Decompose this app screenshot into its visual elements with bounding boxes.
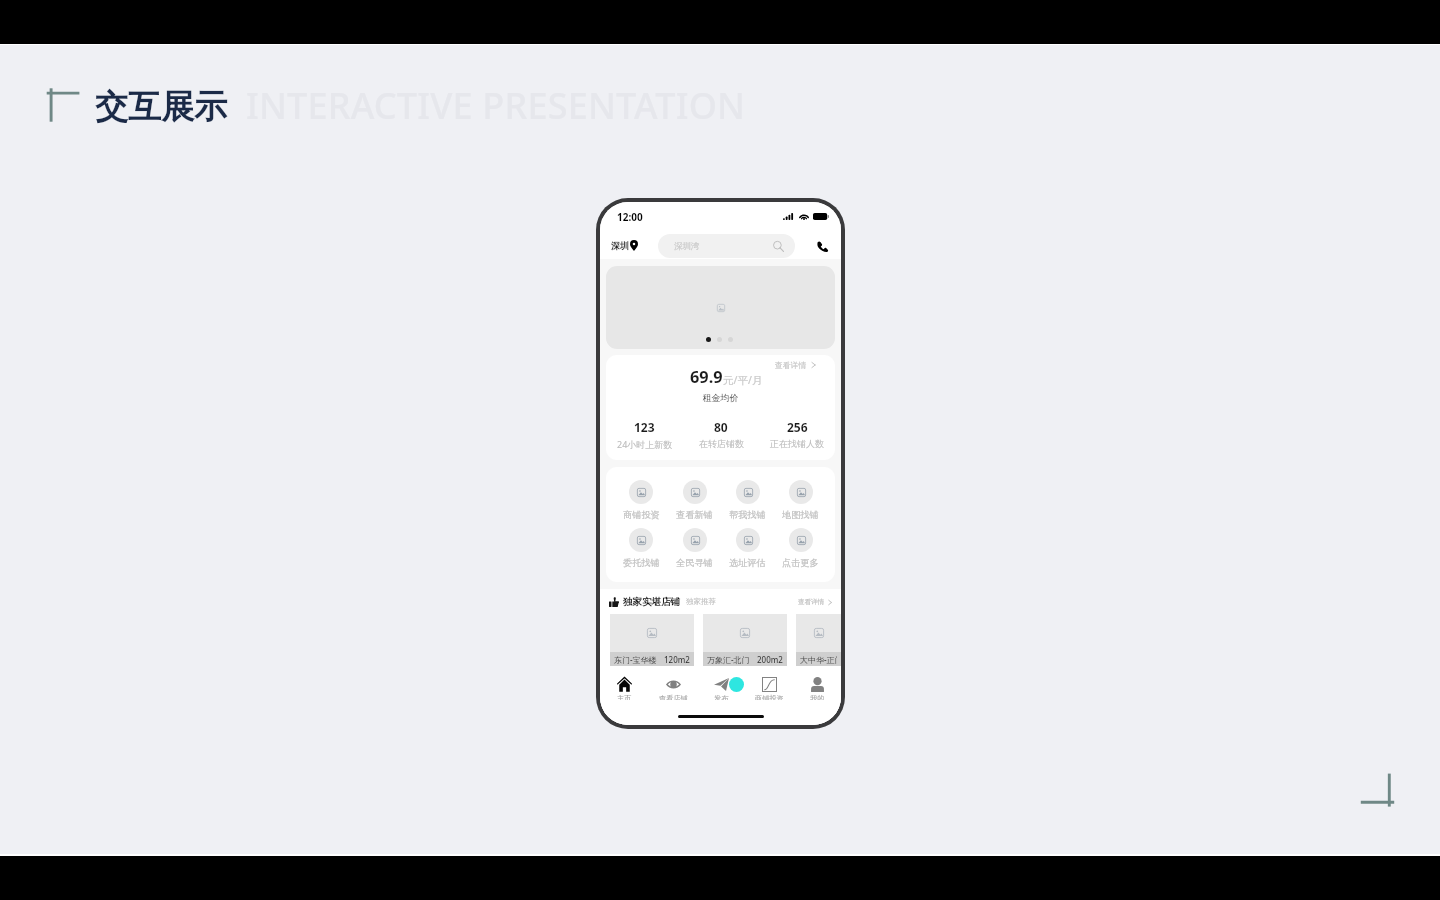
staticText: 全民寻铺 (676, 557, 713, 569)
button[interactable]: 80 (683, 419, 759, 449)
staticText: 24小时上新数 (617, 438, 673, 450)
button[interactable]: 地图找铺 (774, 480, 827, 521)
staticText: 69.9 (690, 366, 723, 388)
staticText: 帮我找铺 (729, 509, 766, 521)
staticText: 我的 (810, 694, 825, 700)
button[interactable]: 帮我找铺 (721, 480, 774, 521)
staticText: 点击更多 (782, 557, 819, 569)
button[interactable]: 查看详情 (798, 598, 832, 606)
button[interactable]: 我的 (793, 668, 841, 700)
staticText: 商铺投资 (623, 509, 660, 521)
button[interactable]: 查看详情 (775, 360, 816, 370)
button[interactable]: 深圳 (611, 240, 638, 251)
button[interactable]: 查看新铺 (668, 480, 721, 521)
staticText: 交互展示 (95, 86, 227, 128)
staticText: 查看新铺 (676, 509, 713, 521)
staticText: 深圳湾 (674, 241, 700, 252)
staticText: 商铺投资 (755, 694, 784, 700)
staticText: 独家推荐 (686, 597, 716, 606)
staticText: 正在找铺人数 (770, 438, 824, 449)
button[interactable]: 商铺投资 (745, 668, 793, 700)
staticText: 80 (714, 419, 728, 435)
button[interactable]: 万象汇-北门 (703, 614, 787, 666)
staticText: 在转店铺数 (699, 438, 744, 449)
button[interactable]: 深圳湾 (658, 234, 795, 258)
staticText: 主页 (617, 694, 632, 700)
staticText: 123 (634, 419, 655, 435)
staticText: 委托找铺 (623, 557, 660, 569)
button[interactable]: 点击更多 (774, 528, 827, 569)
staticText: 选址评估 (729, 557, 766, 569)
staticText: 12:00 (617, 210, 643, 224)
button[interactable]: 查看详情 (606, 355, 835, 460)
staticText: 东门-宝华楼 (614, 654, 657, 665)
staticText: 256 (787, 419, 808, 435)
button[interactable]: Call (815, 239, 829, 253)
button[interactable]: 256 (759, 419, 835, 449)
button[interactable]: 委托找铺 (614, 528, 668, 569)
staticText: 租金均价 (606, 392, 835, 403)
staticText: 深圳 (611, 240, 629, 251)
staticText: 查看详情 (798, 598, 824, 606)
button[interactable]: 123 (606, 419, 683, 450)
button[interactable]: 选址评估 (721, 528, 774, 569)
staticText: INTERACTIVE PRESENTATION (246, 81, 746, 130)
staticText: 万象汇-北门 (707, 654, 750, 665)
button[interactable]: 发布 (697, 668, 745, 700)
staticText: 大中华-正门 (800, 654, 837, 665)
staticText: 独家实堪店铺 (623, 596, 680, 608)
button[interactable]: 商铺投资 (614, 480, 668, 521)
staticText: 元/平/月 (723, 373, 763, 387)
button[interactable]: 大中华-正门 (796, 614, 841, 666)
button[interactable]: 全民寻铺 (668, 528, 721, 569)
staticText: 查看详情 (775, 360, 807, 370)
button[interactable]: Banner (606, 266, 835, 349)
button[interactable]: 主页 (600, 668, 649, 700)
button[interactable]: 查看店铺 (649, 668, 697, 700)
staticText: 200m2 (757, 654, 783, 665)
button[interactable]: 东门-宝华楼 (610, 614, 694, 666)
staticText: 120m2 (664, 654, 690, 665)
staticText: 地图找铺 (782, 509, 819, 521)
staticText: 查看店铺 (659, 694, 688, 700)
staticText: 发布 (714, 694, 729, 700)
